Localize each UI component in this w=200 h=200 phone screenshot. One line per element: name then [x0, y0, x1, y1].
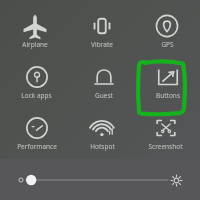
staticText: Lock apps [21, 91, 52, 100]
staticText: Screenshot [148, 142, 183, 151]
button[interactable]: Brightness [18, 174, 182, 186]
button[interactable]: Airplane [22, 15, 48, 49]
staticText: Vibrate [91, 40, 113, 49]
staticText: Airplane [22, 40, 48, 49]
button[interactable]: Lock apps [21, 66, 52, 100]
button[interactable]: Hotspot [90, 117, 115, 151]
button[interactable]: Guest [93, 66, 115, 100]
button[interactable]: GPS [156, 15, 178, 49]
button[interactable]: Buttons [156, 66, 180, 100]
staticText: GPS [161, 40, 174, 49]
staticText: Performance [17, 142, 57, 151]
staticText: Buttons [156, 91, 180, 100]
button[interactable]: Screenshot [148, 117, 183, 151]
button[interactable]: Vibrate [91, 15, 113, 49]
staticText: Hotspot [90, 142, 115, 151]
button[interactable]: Performance [17, 117, 57, 151]
staticText: Guest [95, 91, 113, 100]
